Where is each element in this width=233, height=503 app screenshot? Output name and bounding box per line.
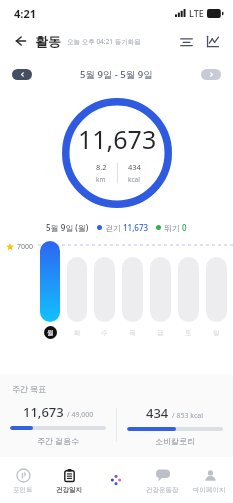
staticText: 4:21 <box>14 6 36 21</box>
staticText: 11,673 <box>23 403 64 421</box>
staticText: 걷기 <box>105 223 121 233</box>
staticText: 7000 <box>17 242 34 252</box>
staticText: 오늘 오후 04:21 동기화됨 <box>67 37 141 46</box>
staticText: 포인트 <box>13 486 33 494</box>
staticText: 5월 9일 (월) <box>46 222 89 233</box>
staticText: 건강운동장 <box>146 486 179 494</box>
staticText: kcal <box>128 175 140 184</box>
staticText: 11,673 <box>123 222 149 233</box>
staticText: 토 <box>185 329 192 337</box>
staticText: 수 <box>101 329 108 337</box>
button[interactable]: 목록 보기 <box>173 28 199 54</box>
staticText: 마이페이지 <box>193 486 226 494</box>
button[interactable]: 빅스비 <box>92 457 139 503</box>
staticText: 5월 9일 - 5월 9일 <box>80 68 153 81</box>
staticText: 11,673 <box>78 122 157 156</box>
button[interactable]: 마이페이지 <box>186 457 233 503</box>
staticText: 뛰기 <box>164 223 180 233</box>
button[interactable]: 다음 <box>201 69 221 80</box>
staticText: 434 <box>128 162 141 172</box>
button[interactable]: 건강운동장 <box>139 457 186 503</box>
staticText: 434 <box>146 404 169 422</box>
staticText: 활동 <box>35 33 61 49</box>
button[interactable]: 434 <box>117 404 233 446</box>
staticText: 건강일지 <box>56 486 82 494</box>
staticText: 금 <box>157 329 164 337</box>
staticText: 일 <box>213 329 220 337</box>
button[interactable]: 포인트 <box>0 457 46 503</box>
staticText: 월 <box>47 329 54 337</box>
button[interactable]: 뒤로 <box>8 29 32 53</box>
staticText: 주간 걸음수 <box>37 435 80 446</box>
staticText: / 49,000 <box>67 410 94 420</box>
button[interactable]: 통계 보기 <box>199 28 225 54</box>
staticText: 8.2 <box>96 162 107 172</box>
button[interactable]: 11,673 <box>0 403 116 446</box>
staticText: / 853 kcal <box>172 411 204 421</box>
button[interactable]: 이전 <box>12 69 32 80</box>
staticText: 화 <box>74 329 81 337</box>
staticText: 소비칼로리 <box>155 436 195 446</box>
staticText: 0 <box>182 222 187 233</box>
staticText: km <box>96 175 106 184</box>
button[interactable]: 건강일지 <box>46 457 92 503</box>
staticText: 주간 목표 <box>12 383 47 394</box>
staticText: LTE <box>189 7 204 19</box>
staticText: 목 <box>129 329 136 337</box>
